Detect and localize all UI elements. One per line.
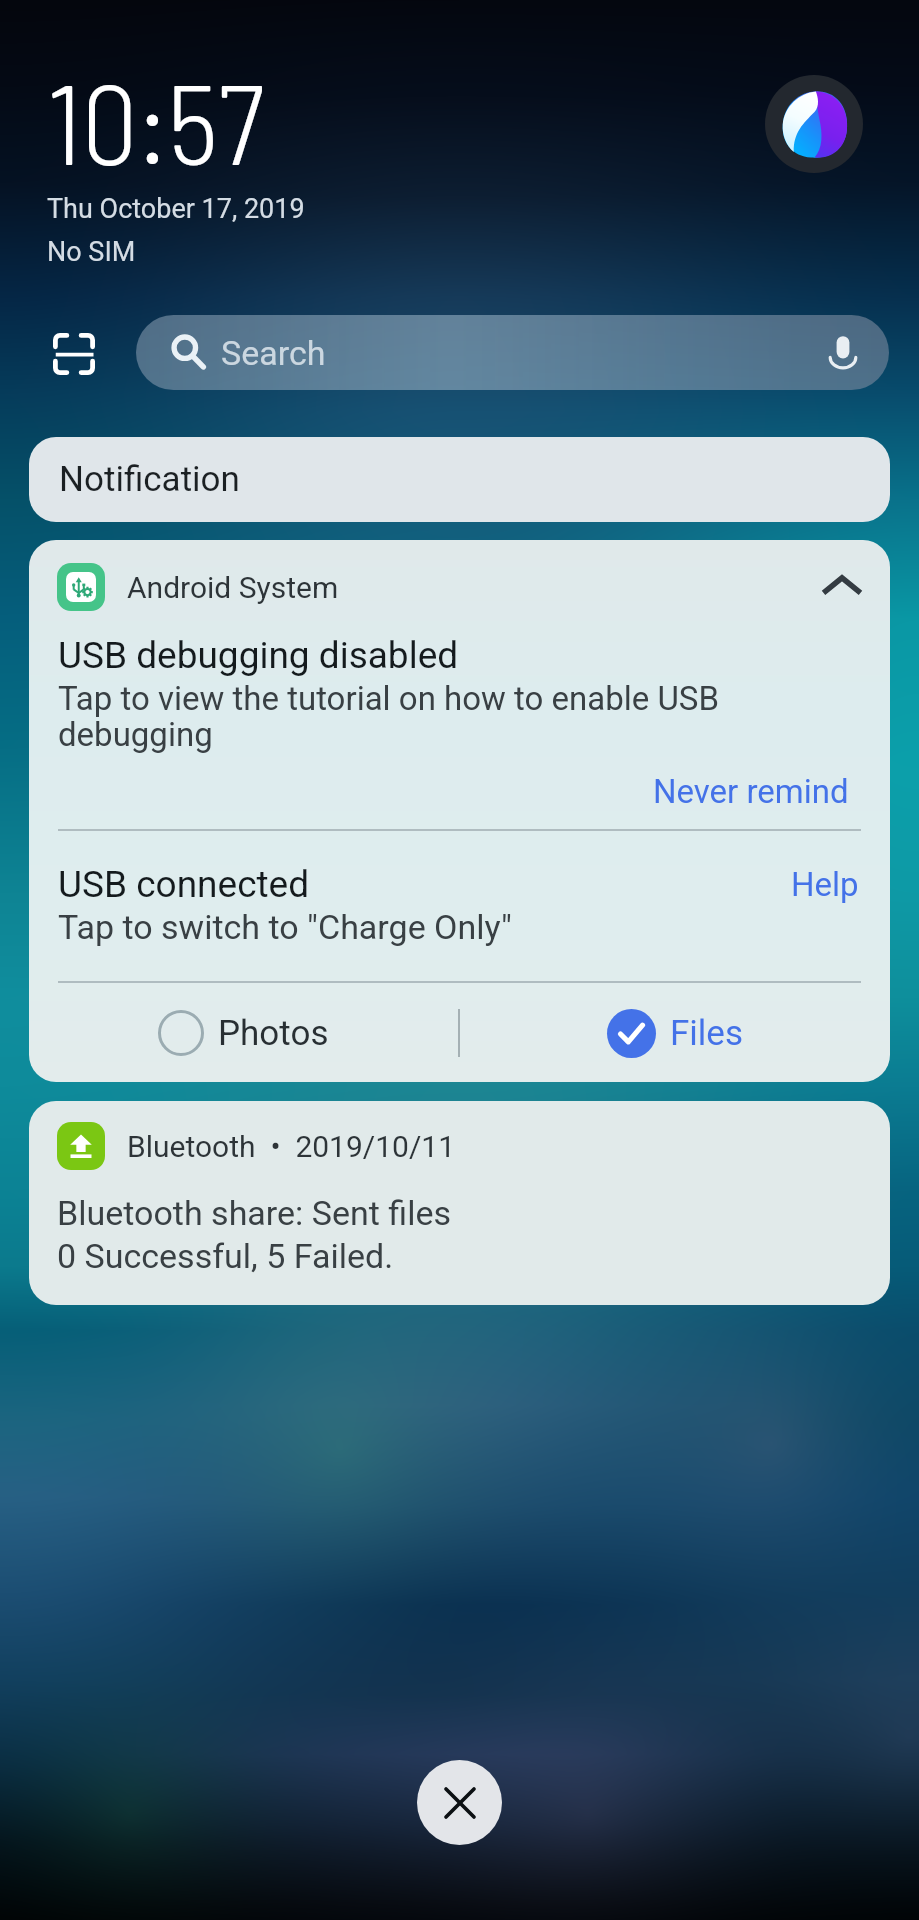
staticText: Photos [218,1013,329,1054]
staticText: USB connected [58,863,310,906]
button[interactable]: Scan [47,327,101,381]
button[interactable]: Close [417,1760,502,1845]
staticText: 0 Successful, 5 Failed. [57,1236,394,1276]
button[interactable]: Android System [29,540,890,1082]
button[interactable]: Voice search [817,327,869,379]
button[interactable]: Never remind [643,762,859,821]
staticText: Bluetooth • 2019/10/11 [127,1129,456,1164]
staticText: Bluetooth share: Sent files [57,1193,451,1233]
staticText: Android System [127,570,339,605]
button[interactable]: Assistant [765,75,863,173]
staticText: Search [221,333,326,373]
staticText: Thu October 17, 2019 [47,193,305,225]
staticText: 10:57 [48,53,265,187]
button[interactable]: Photos [29,984,458,1082]
staticText: Help [791,865,859,904]
staticText: Tap to view the tutorial on how to enabl… [58,679,738,754]
button[interactable]: Bluetooth • 2019/10/11 [29,1101,890,1305]
staticText: Files [670,1013,743,1054]
staticText: Never remind [653,772,849,811]
staticText: Tap to switch to "Charge Only" [58,907,512,947]
button[interactable]: Files [460,984,890,1082]
button[interactable]: Help [781,865,869,904]
staticText: No SIM [47,236,136,268]
button[interactable]: Search [136,315,889,390]
button[interactable]: Collapse [816,561,868,613]
button[interactable]: Notification [29,437,890,522]
staticText: USB debugging disabled [58,634,459,677]
staticText: Notification [59,459,240,500]
